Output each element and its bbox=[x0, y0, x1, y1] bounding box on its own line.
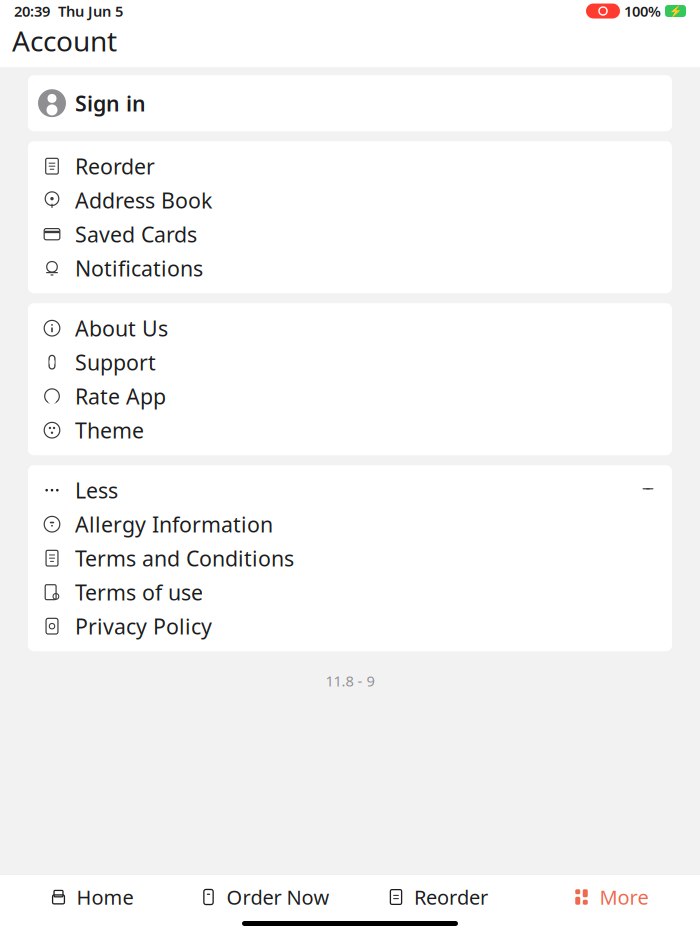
button[interactable]: Support bbox=[28, 345, 672, 379]
button[interactable]: Allergy Information bbox=[28, 507, 672, 541]
staticText: About Us bbox=[75, 314, 168, 342]
staticText: Home bbox=[76, 884, 133, 910]
staticText: Rate App bbox=[75, 382, 166, 410]
button[interactable]: About Us bbox=[28, 311, 672, 345]
staticText: Theme bbox=[75, 416, 144, 444]
button[interactable]: Theme bbox=[28, 413, 672, 447]
staticText: Thu Jun 5 bbox=[50, 1, 123, 21]
staticText: 20:39 bbox=[14, 1, 50, 21]
button[interactable]: Home bbox=[4, 875, 177, 919]
staticText: ⚡ bbox=[669, 5, 682, 17]
button[interactable]: More bbox=[523, 875, 696, 919]
staticText: Notifications bbox=[75, 254, 203, 282]
staticText: Sign in bbox=[75, 89, 146, 117]
staticText: Account bbox=[12, 22, 117, 59]
staticText: Address Book bbox=[75, 186, 212, 214]
staticText: Saved Cards bbox=[75, 220, 197, 248]
staticText: Privacy Policy bbox=[75, 612, 212, 640]
staticText: Terms and Conditions bbox=[75, 544, 294, 572]
button[interactable]: Sign in bbox=[28, 83, 672, 123]
button[interactable]: Reorder bbox=[28, 149, 672, 183]
staticText: Reorder bbox=[75, 152, 155, 180]
button[interactable]: Less bbox=[28, 473, 672, 507]
button[interactable]: Privacy Policy bbox=[28, 609, 672, 643]
staticText: Allergy Information bbox=[75, 510, 273, 538]
staticText: 100% bbox=[620, 1, 665, 21]
button[interactable]: Saved Cards bbox=[28, 217, 672, 251]
button[interactable]: Rate App bbox=[28, 379, 672, 413]
button[interactable]: Address Book bbox=[28, 183, 672, 217]
staticText: Order Now bbox=[226, 884, 329, 910]
button[interactable]: Reorder bbox=[350, 875, 523, 919]
staticText: More bbox=[599, 884, 648, 910]
staticText: Terms of use bbox=[75, 578, 203, 606]
staticText: Reorder bbox=[414, 884, 488, 910]
button[interactable]: Terms and Conditions bbox=[28, 541, 672, 575]
staticText: 11.8 - 9 bbox=[325, 671, 374, 691]
button[interactable]: Terms of use bbox=[28, 575, 672, 609]
button[interactable]: Notifications bbox=[28, 251, 672, 285]
button[interactable]: Order Now bbox=[177, 875, 350, 919]
staticText: Less bbox=[75, 476, 118, 504]
staticText: Support bbox=[75, 348, 156, 376]
